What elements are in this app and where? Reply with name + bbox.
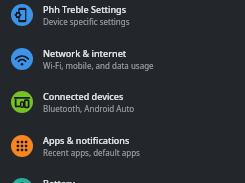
button[interactable]: Apps & notifications — [0, 124, 245, 168]
button[interactable]: Connected devices — [0, 80, 245, 124]
staticText: Network & internet — [43, 47, 127, 59]
staticText: Phh Treble Settings — [43, 3, 127, 15]
staticText: Battery — [43, 177, 75, 183]
staticText: Wi-Fi, mobile, and data usage — [43, 60, 154, 71]
staticText: Recent apps, default apps — [43, 147, 140, 158]
staticText: Connected devices — [43, 90, 124, 102]
staticText: Bluetooth, Android Auto — [43, 103, 135, 114]
staticText: Apps & notifications — [43, 134, 130, 146]
staticText: Device specific settings — [43, 16, 130, 27]
button[interactable]: Phh Treble Settings — [0, 0, 245, 37]
button[interactable]: Network & internet — [0, 37, 245, 81]
button[interactable]: Battery — [0, 167, 245, 183]
